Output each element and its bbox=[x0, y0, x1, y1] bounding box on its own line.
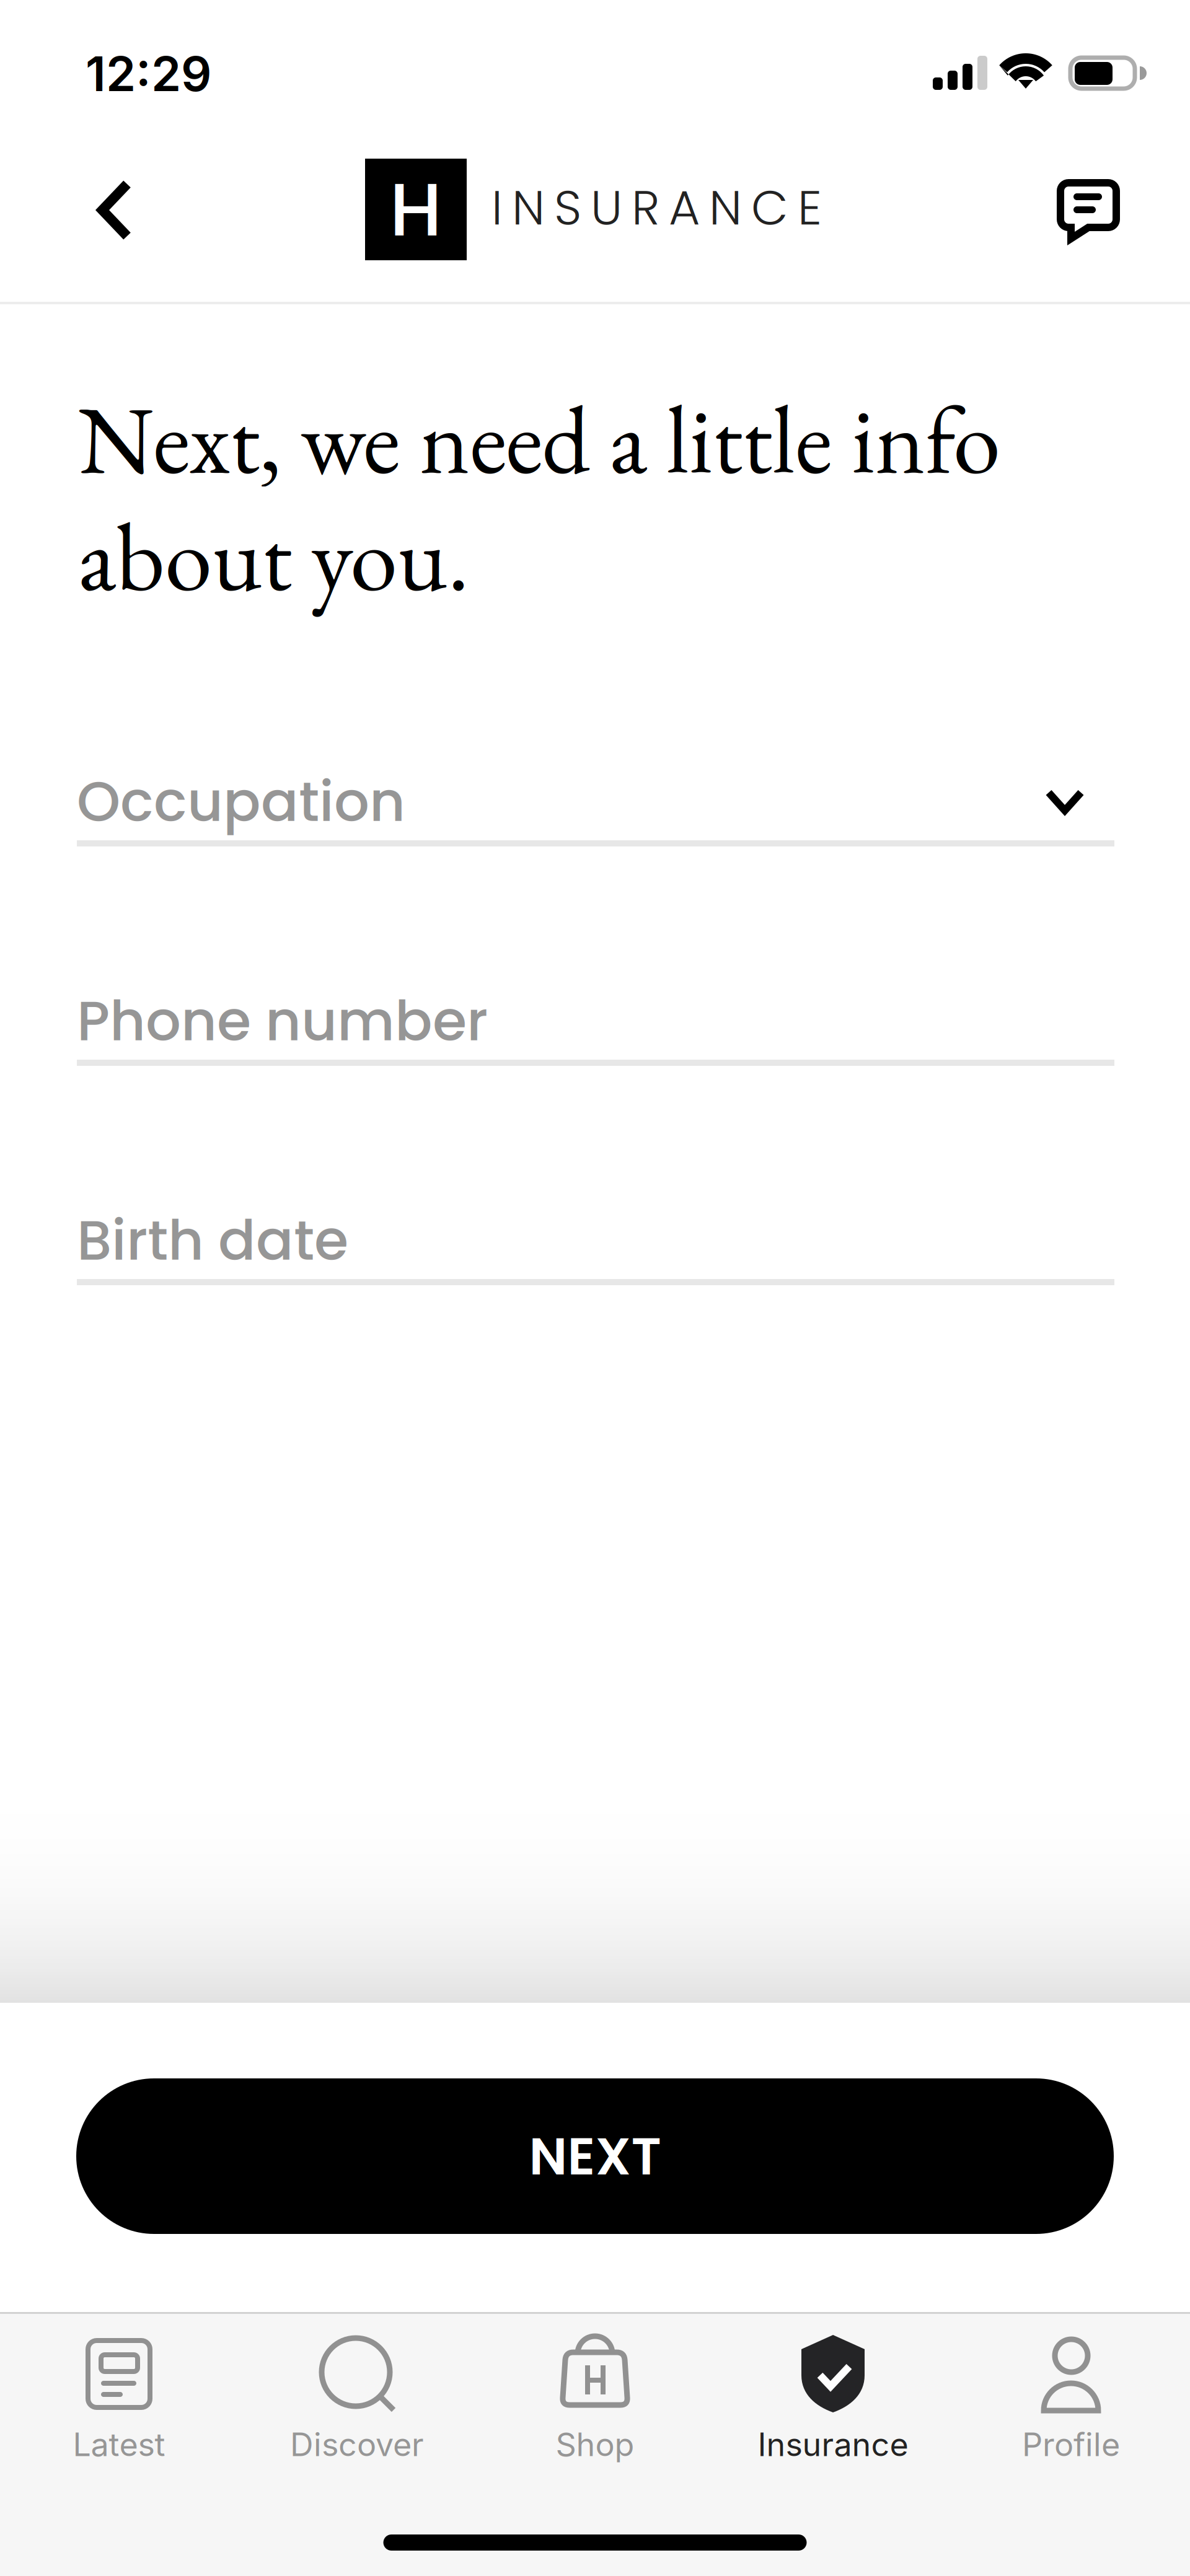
staticText: 12:29 bbox=[86, 45, 211, 103]
staticText: Next, we need a little info bbox=[78, 377, 1000, 501]
button[interactable]: Discover bbox=[238, 2314, 476, 2468]
staticText: about you. bbox=[78, 494, 469, 618]
staticText: Latest bbox=[73, 2425, 165, 2464]
staticText: NEXT bbox=[529, 2120, 661, 2193]
staticText: Shop bbox=[556, 2425, 634, 2464]
button[interactable]: Occupation bbox=[0, 776, 1190, 846]
staticText: I N S U R A N C E bbox=[491, 174, 822, 241]
button[interactable]: Shop bbox=[476, 2314, 714, 2468]
button[interactable]: NEXT bbox=[76, 2078, 1114, 2234]
staticText: H bbox=[390, 157, 442, 262]
staticText: Phone number bbox=[77, 982, 488, 1060]
button[interactable]: Profile bbox=[952, 2314, 1190, 2468]
staticText: Insurance bbox=[758, 2425, 908, 2464]
button[interactable]: Back bbox=[68, 164, 161, 257]
button[interactable]: Latest bbox=[0, 2314, 238, 2468]
staticText: Discover bbox=[290, 2425, 424, 2464]
button[interactable]: Phone number bbox=[0, 995, 1190, 1066]
staticText: Birth date bbox=[77, 1201, 348, 1279]
button[interactable]: Insurance bbox=[714, 2314, 952, 2468]
staticText: Profile bbox=[1022, 2425, 1120, 2464]
button[interactable]: Birth date bbox=[0, 1215, 1190, 1285]
staticText: Occupation bbox=[77, 763, 405, 840]
button[interactable]: Messages bbox=[1042, 164, 1135, 257]
